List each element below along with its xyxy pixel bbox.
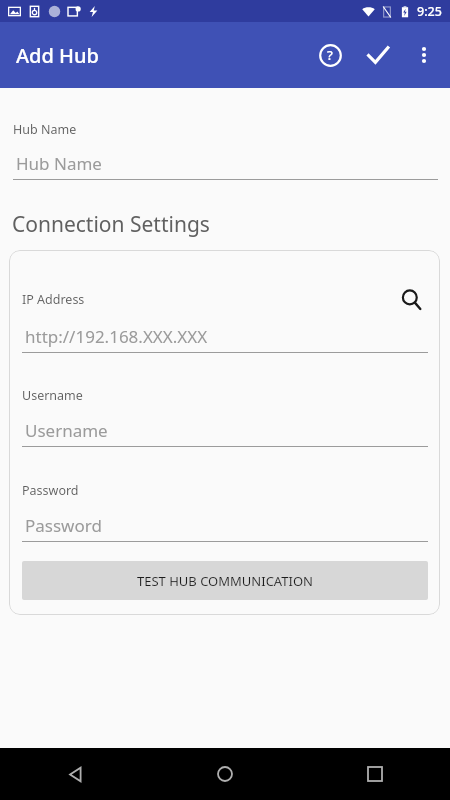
staticText: IP Address <box>22 291 85 308</box>
button[interactable]: TEST HUB COMMUNICATION <box>22 561 428 600</box>
button[interactable]: Save <box>354 31 402 79</box>
staticText: http://192.168.XXX.XXX <box>25 325 208 348</box>
button[interactable]: Recents <box>300 748 450 800</box>
staticText: Connection Settings <box>12 210 210 239</box>
staticText: Hub Name <box>13 121 77 138</box>
button[interactable]: More options <box>402 33 446 77</box>
staticText: Username <box>25 419 108 442</box>
button[interactable]: Help <box>306 31 354 79</box>
button[interactable]: Password <box>22 514 428 542</box>
button[interactable]: Username <box>22 419 428 447</box>
staticText: TEST HUB COMMUNICATION <box>137 572 313 590</box>
staticText: 9:25 <box>417 3 442 20</box>
button[interactable]: Back <box>0 748 150 800</box>
staticText: Password <box>25 514 102 537</box>
staticText: Password <box>22 482 79 499</box>
staticText: Hub Name <box>16 152 102 175</box>
staticText: Username <box>22 387 83 404</box>
button[interactable]: Hub Name <box>13 152 438 180</box>
button[interactable]: Home <box>150 748 300 800</box>
staticText: ? <box>327 46 333 64</box>
button[interactable]: http://192.168.XXX.XXX <box>22 325 428 353</box>
staticText: Add Hub <box>16 42 99 69</box>
button[interactable]: Search <box>394 282 428 316</box>
